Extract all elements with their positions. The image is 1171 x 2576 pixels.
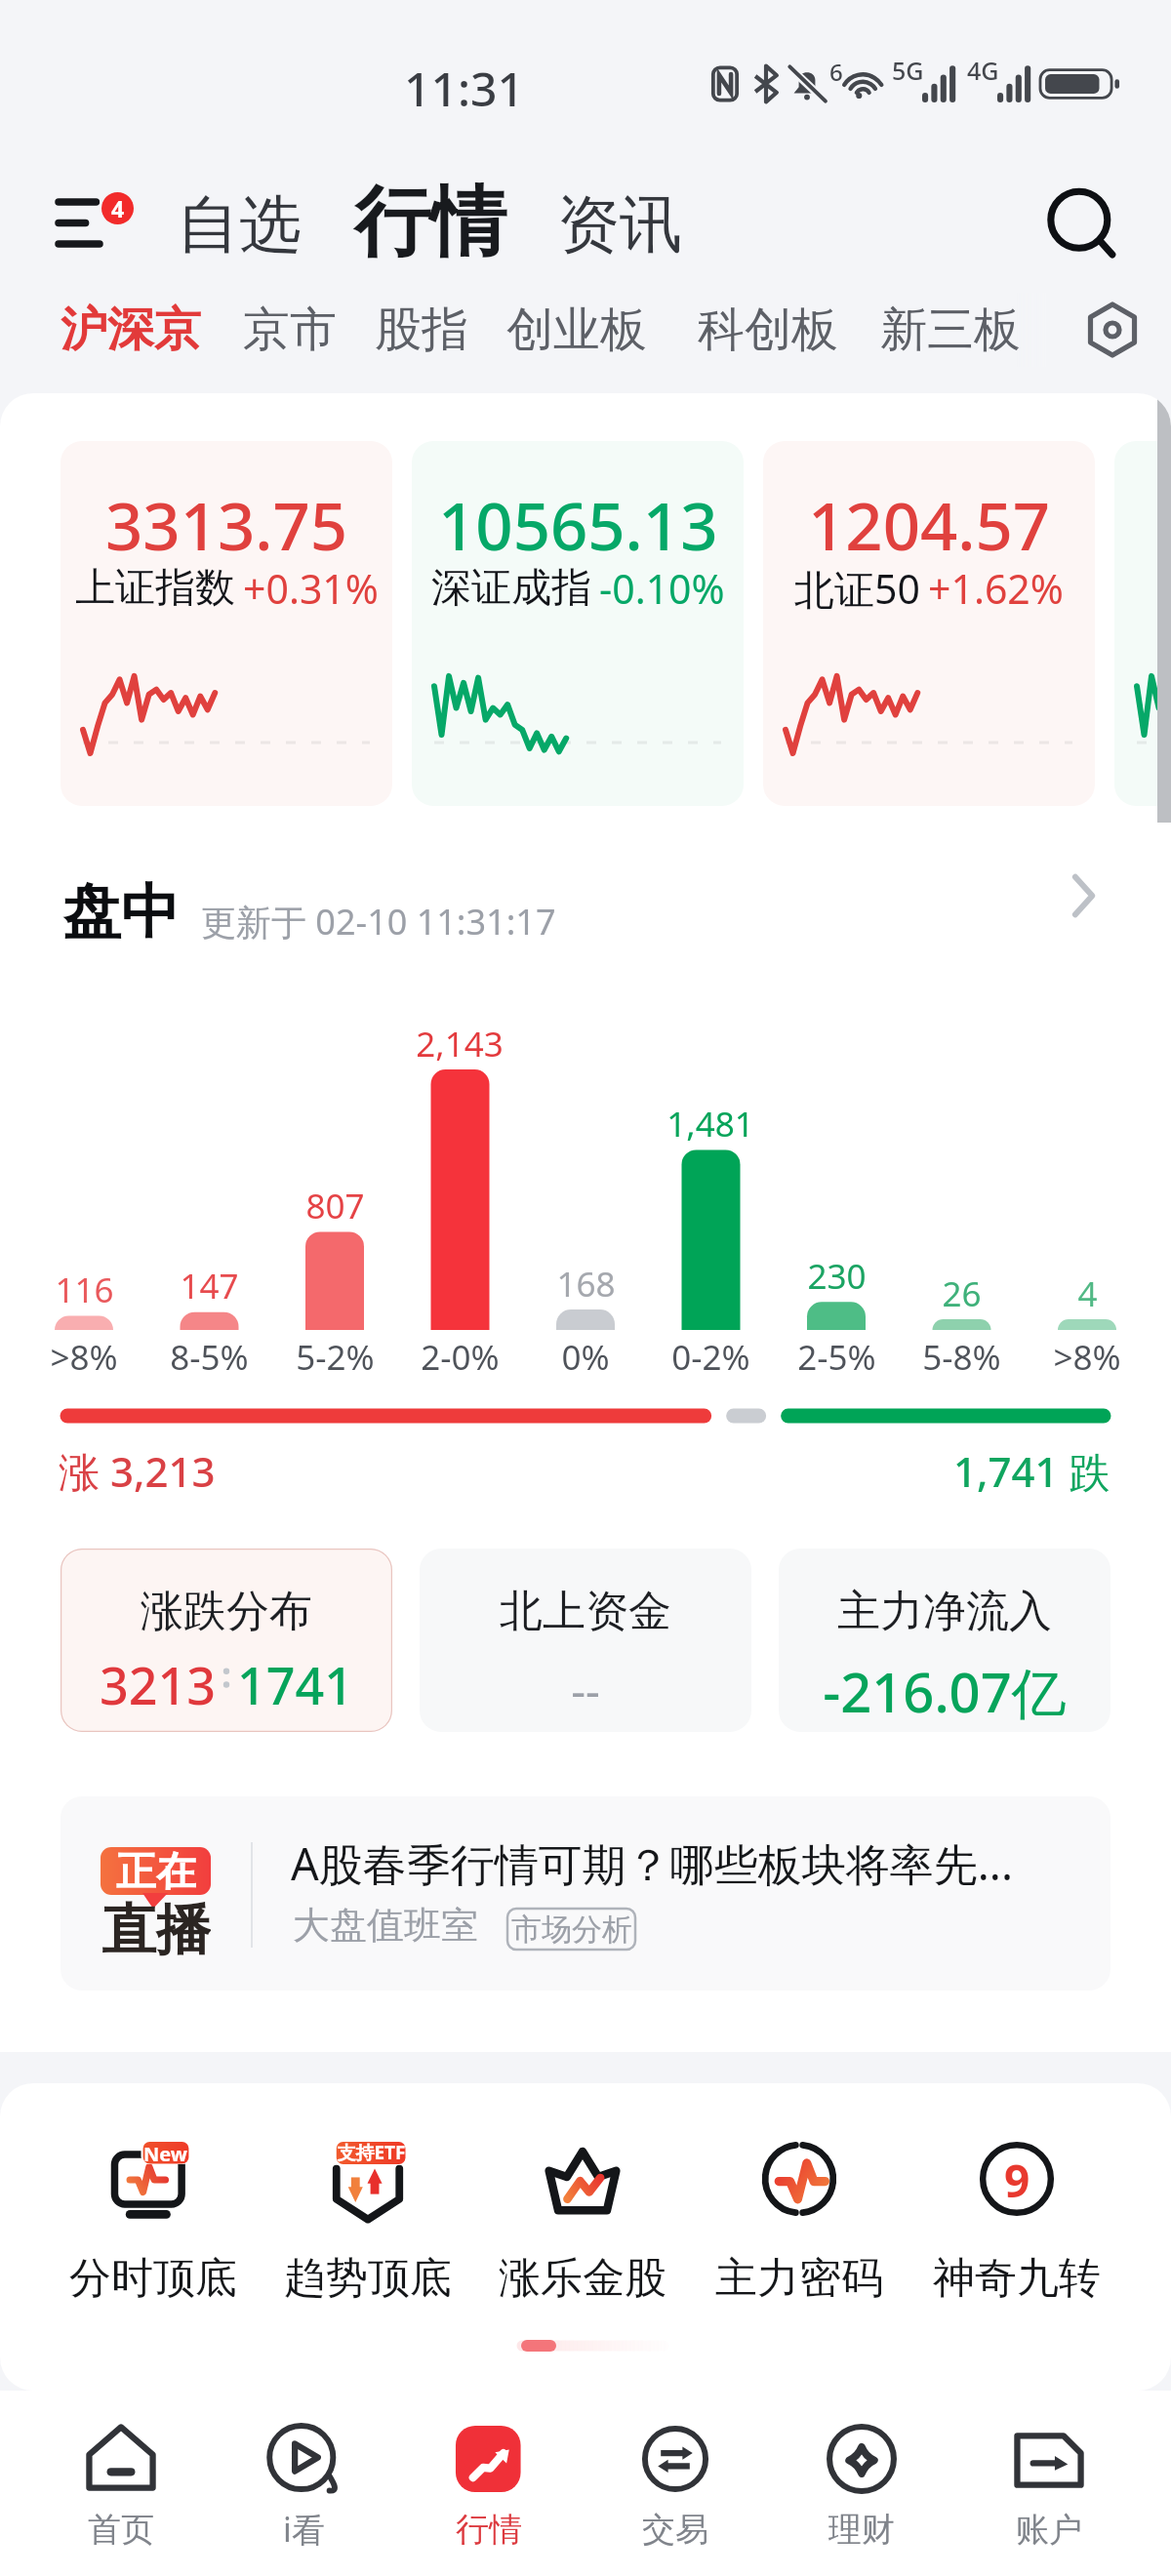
staticText: 1,481 (666, 1101, 754, 1147)
button[interactable] (774, 2408, 949, 2559)
staticText: 4G (967, 54, 999, 87)
staticText: 涨 3,213 (59, 1443, 216, 1499)
staticText: 3313.75 (105, 480, 348, 558)
button[interactable]: 创业板 (501, 295, 653, 365)
button[interactable]: Search (1034, 181, 1132, 271)
staticText: 0% (561, 1334, 610, 1381)
button[interactable] (961, 2408, 1137, 2559)
staticText: 交易 (642, 2509, 708, 2551)
button[interactable]: 3313.75 (61, 441, 392, 806)
staticText: New (143, 2141, 187, 2164)
staticText: 账户 (1016, 2509, 1082, 2551)
staticText: 2-5% (797, 1334, 876, 1381)
staticText: 1204.57 (808, 480, 1051, 558)
staticText: 主力密码 (715, 2252, 883, 2305)
staticText: 230 (807, 1253, 867, 1300)
button[interactable] (33, 2408, 209, 2559)
button[interactable]: 正在 (61, 1796, 1110, 1991)
button[interactable]: 股指 (369, 295, 474, 365)
staticText: +1.62% (928, 561, 1064, 616)
button[interactable] (216, 2408, 391, 2559)
button[interactable]: 1204.57 (763, 441, 1095, 806)
staticText: 1741 (237, 1650, 353, 1709)
staticText: 8-5% (170, 1334, 249, 1381)
staticText: 直播 (101, 1896, 211, 1956)
staticText: 6 (829, 56, 843, 88)
button[interactable]: 2 (1114, 441, 1171, 806)
button[interactable]: 科创板 (692, 295, 844, 365)
staticText: 0-2% (671, 1334, 750, 1381)
staticText: 北上资金 (500, 1585, 671, 1638)
button[interactable] (779, 1549, 1110, 1732)
button[interactable] (697, 2113, 902, 2332)
button[interactable]: 自选 (168, 174, 310, 275)
staticText: 5-2% (296, 1334, 375, 1381)
staticText: 支持ETF (337, 2140, 406, 2163)
staticText: 4 (1077, 1270, 1098, 1317)
button[interactable] (420, 1549, 751, 1732)
staticText: 盘中 (62, 875, 180, 949)
staticText: -216.07亿 (823, 1654, 1067, 1728)
staticText: 更新于 02-10 11:31:17 (201, 898, 556, 946)
staticText: 资讯 (557, 185, 682, 264)
staticText: 大盘值班室 (293, 1902, 478, 1949)
button[interactable]: 新三板 (874, 295, 1027, 365)
staticText: 自选 (177, 185, 302, 264)
staticText: 1,741 跌 (953, 1443, 1110, 1499)
button[interactable] (51, 2113, 256, 2332)
staticText: 10565.13 (438, 480, 718, 558)
staticText: 正在 (116, 1847, 196, 1895)
staticText: 趋势顶底 (284, 2252, 452, 2305)
staticText: 行情 (456, 2509, 522, 2551)
button[interactable]: 行情 (340, 164, 521, 281)
button[interactable]: 10565.13 (412, 441, 744, 806)
staticText: 行情 (354, 175, 506, 270)
button[interactable]: More tabs (1077, 293, 1148, 367)
staticText: 首页 (88, 2509, 154, 2551)
staticText: 上证指数 (75, 563, 235, 614)
staticText: 深证成指 (431, 563, 591, 614)
button[interactable] (914, 2113, 1119, 2332)
staticText: 5-8% (922, 1334, 1001, 1381)
staticText: 147 (180, 1263, 239, 1309)
staticText: 11:31 (404, 57, 524, 120)
staticText: A股春季行情可期？哪些板块将率先... (291, 1833, 1013, 1893)
staticText: -- (571, 1659, 600, 1720)
staticText: 2,143 (416, 1021, 504, 1067)
staticText: 4 (111, 193, 125, 223)
staticText: i看 (283, 2507, 325, 2552)
staticText: 神奇九转 (933, 2252, 1101, 2305)
button[interactable] (401, 2408, 577, 2559)
staticText: 分时顶底 (69, 2252, 237, 2305)
staticText: 股指 (375, 301, 468, 359)
staticText: -0.10% (599, 561, 725, 616)
staticText: 沪深京 (61, 301, 201, 359)
staticText: 26 (942, 1270, 982, 1317)
staticText: 京市 (243, 301, 337, 359)
staticText: +0.31% (243, 561, 379, 616)
staticText: 807 (305, 1183, 365, 1229)
staticText: 市场分析 (511, 1911, 632, 1949)
staticText: >8% (1053, 1334, 1121, 1381)
button[interactable] (265, 2113, 470, 2332)
button[interactable]: 资讯 (548, 174, 691, 275)
staticText: 北证50 (794, 561, 920, 616)
button[interactable]: 京市 (237, 295, 343, 365)
button[interactable]: 沪深京 (55, 295, 207, 365)
staticText: 理财 (828, 2509, 895, 2551)
staticText: 主力净流入 (837, 1585, 1052, 1638)
button[interactable] (61, 1549, 392, 1732)
staticText: 5G (892, 54, 924, 87)
staticText: 涨跌分布 (141, 1585, 312, 1638)
button[interactable]: Menu (43, 180, 144, 271)
staticText: >8% (50, 1334, 118, 1381)
button[interactable] (480, 2113, 685, 2332)
button[interactable] (587, 2408, 763, 2559)
staticText: 科创板 (698, 301, 838, 359)
staticText: 9 (1004, 2150, 1030, 2208)
staticText: 涨乐金股 (499, 2252, 666, 2305)
staticText: 创业板 (506, 301, 647, 359)
staticText: 新三板 (880, 301, 1021, 359)
button[interactable]: 盘中 (39, 862, 722, 949)
staticText: 3213 (100, 1650, 216, 1709)
